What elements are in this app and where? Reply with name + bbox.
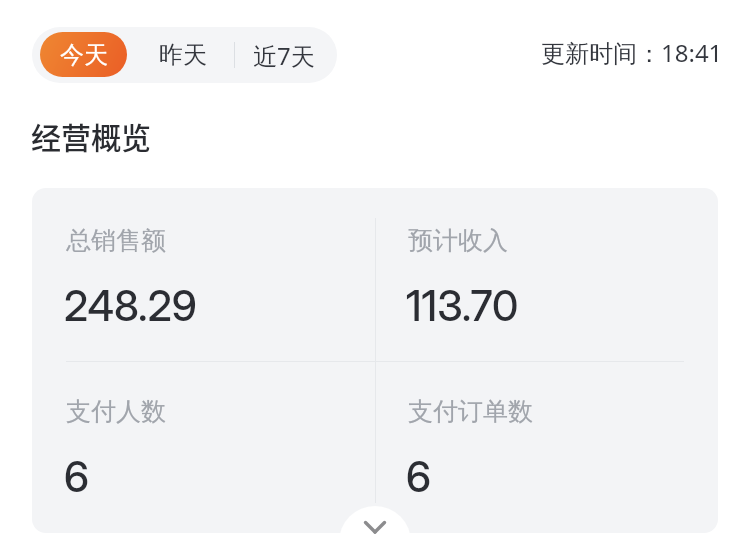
staticText: 更新时间：18:41 [541, 36, 723, 69]
button[interactable]: 更新时间：18:41 [541, 36, 723, 69]
staticText: 248.29 [64, 280, 197, 331]
staticText: 总销售额 [66, 225, 166, 256]
button[interactable]: 总销售额 [66, 225, 366, 355]
button[interactable]: 昨天 [143, 27, 223, 83]
staticText: 6 [64, 451, 89, 502]
staticText: 支付订单数 [408, 396, 533, 427]
staticText: 113.70 [406, 280, 519, 331]
button[interactable]: 今天 [40, 32, 127, 77]
staticText: 近7天 [253, 39, 315, 72]
staticText: 预计收入 [408, 225, 508, 256]
staticText: 昨天 [159, 40, 207, 70]
button[interactable]: 支付订单数 [408, 396, 708, 526]
staticText: 经营概览 [31, 114, 151, 157]
button[interactable]: 近7天 [243, 27, 324, 83]
staticText: 今天 [60, 40, 108, 70]
button[interactable]: 预计收入 [408, 225, 708, 355]
button[interactable]: 支付人数 [66, 396, 366, 526]
button[interactable]: 展开更多数据 [339, 506, 411, 550]
staticText: 6 [406, 451, 431, 502]
staticText: 支付人数 [66, 396, 166, 427]
